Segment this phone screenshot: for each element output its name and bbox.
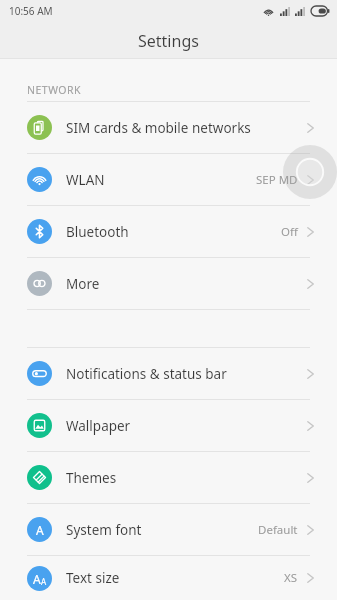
button[interactable]: Bluetooth — [0, 206, 337, 257]
staticText: A — [36, 522, 44, 538]
staticText: Themes — [66, 469, 117, 487]
staticText: WLAN — [66, 171, 105, 189]
staticText: Text size — [66, 569, 120, 587]
staticText: Default — [258, 522, 298, 538]
button[interactable]: A — [0, 556, 337, 600]
staticText: Notifications & status bar — [66, 365, 227, 383]
staticText: NETWORK — [27, 83, 82, 97]
button[interactable]: Themes — [0, 452, 337, 503]
staticText: System font — [66, 521, 142, 539]
button[interactable]: A — [0, 504, 337, 555]
staticText: Bluetooth — [66, 223, 129, 241]
staticText: More — [66, 275, 100, 293]
staticText: A — [33, 571, 41, 587]
staticText: 10:56 AM — [9, 4, 53, 18]
staticText: A — [41, 576, 47, 587]
staticText: Settings — [138, 30, 199, 52]
button[interactable]: Wallpaper — [0, 400, 337, 451]
staticText: Off — [281, 224, 298, 240]
staticText: SEP MD — [256, 172, 298, 188]
staticText: XS — [284, 570, 298, 586]
button[interactable]: More — [0, 258, 337, 309]
staticText: SIM cards & mobile networks — [66, 119, 251, 137]
staticText: Wallpaper — [66, 417, 131, 435]
button[interactable]: Quick ball — [283, 145, 337, 199]
button[interactable]: WLAN — [0, 154, 337, 205]
button[interactable]: SIM cards & mobile networks — [0, 102, 337, 153]
button[interactable]: Notifications & status bar — [0, 348, 337, 399]
